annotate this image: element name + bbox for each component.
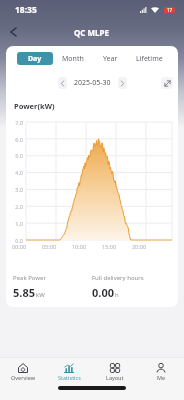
- staticText: Peak Power: [13, 274, 46, 282]
- button[interactable]: Statistics: [46, 363, 92, 381]
- staticText: h: [115, 291, 119, 299]
- staticText: 10:00: [69, 243, 89, 250]
- staticText: 00:00: [9, 243, 29, 250]
- button[interactable]: Year: [93, 52, 127, 65]
- button[interactable]: Month: [56, 52, 90, 65]
- staticText: 0.0: [6, 237, 23, 244]
- staticText: 1.0: [6, 220, 23, 227]
- button[interactable]: Next day: [118, 77, 127, 89]
- staticText: 2.0: [6, 203, 23, 210]
- staticText: Month: [62, 54, 84, 64]
- staticText: 6.0: [6, 136, 23, 143]
- button[interactable]: Previous day: [58, 77, 67, 89]
- staticText: Full delivery hours: [92, 274, 144, 282]
- staticText: 4.0: [6, 169, 23, 176]
- staticText: Overview: [11, 374, 35, 381]
- button[interactable]: Day: [17, 52, 53, 65]
- staticText: Layout: [106, 374, 124, 381]
- staticText: 7.0: [6, 119, 23, 126]
- staticText: Year: [103, 54, 118, 64]
- staticText: 18:35: [15, 4, 37, 16]
- staticText: 0.00: [92, 285, 114, 300]
- staticText: 2025-05-30: [74, 78, 111, 88]
- button[interactable]: Lifetime: [132, 52, 166, 65]
- staticText: 20:00: [129, 243, 149, 250]
- staticText: 17: [167, 7, 173, 13]
- staticText: 15:00: [99, 243, 119, 250]
- staticText: Statistics: [58, 374, 81, 381]
- staticText: Day: [28, 54, 42, 64]
- staticText: kW: [36, 291, 45, 299]
- staticText: 5.85: [13, 285, 35, 300]
- staticText: 05:00: [39, 243, 59, 250]
- staticText: 3.0: [6, 186, 23, 193]
- button[interactable]: Me: [138, 363, 184, 381]
- button[interactable]: Fullscreen: [161, 77, 173, 89]
- button[interactable]: Layout: [92, 363, 138, 381]
- button[interactable]: Back: [5, 24, 21, 40]
- staticText: Lifetime: [136, 54, 163, 64]
- staticText: Power(kW): [14, 101, 55, 111]
- staticText: QC MLPE: [74, 27, 110, 38]
- staticText: Me: [157, 374, 166, 381]
- button[interactable]: Overview: [0, 363, 46, 381]
- staticText: 5.0: [6, 152, 23, 159]
